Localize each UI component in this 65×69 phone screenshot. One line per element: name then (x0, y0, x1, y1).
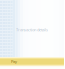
staticText: Pay (11, 59, 17, 64)
staticText: Transaction details (16, 27, 48, 32)
